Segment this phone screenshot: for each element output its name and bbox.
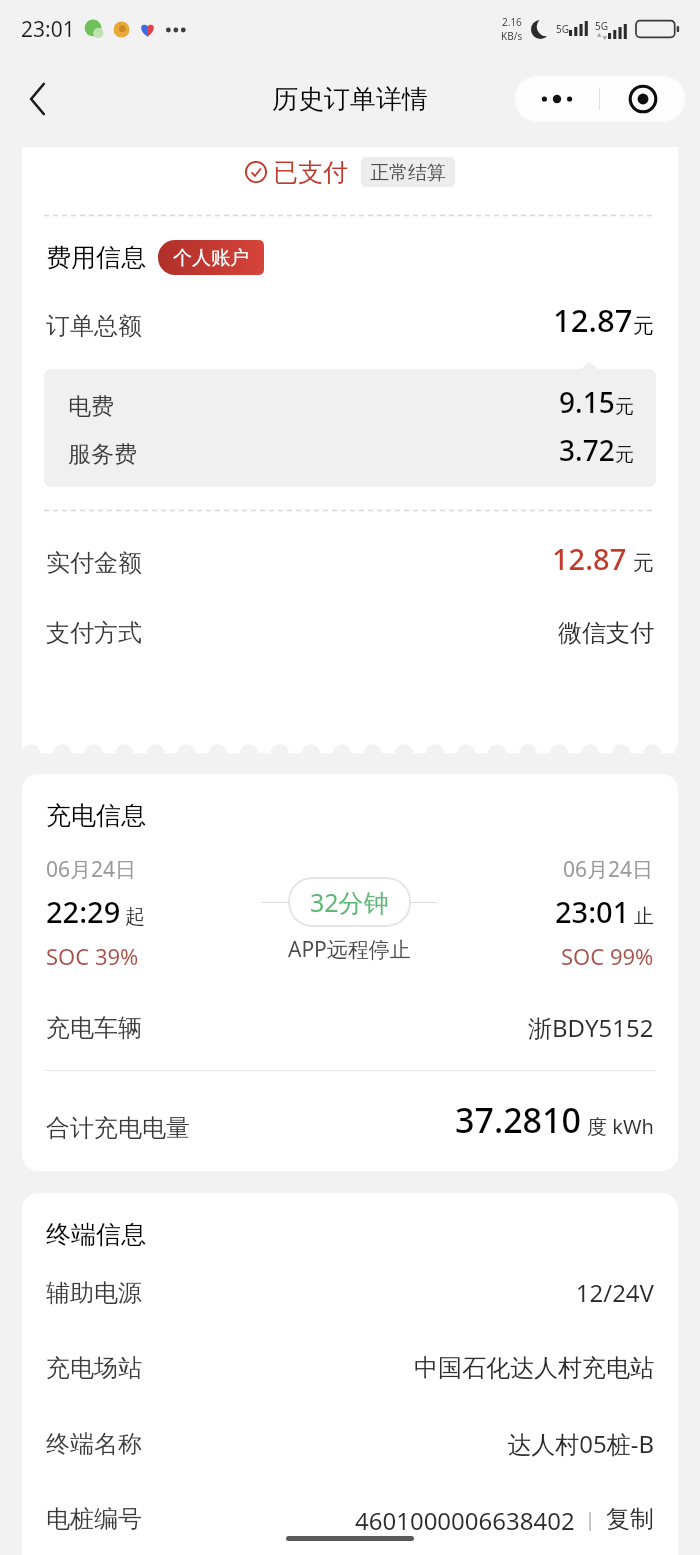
staticText: 12.87 xyxy=(552,539,627,578)
staticText: 中国石化达人村充电站 xyxy=(414,1353,654,1383)
staticText: 37.2810 xyxy=(455,1097,581,1143)
staticText: 3.72 xyxy=(559,431,615,469)
staticText: 32分钟 xyxy=(310,885,389,919)
staticText: 实付金额 xyxy=(46,548,142,578)
staticText: 12/24V xyxy=(575,1276,654,1309)
staticText: 5G xyxy=(556,22,569,36)
staticText: 元 xyxy=(615,395,634,419)
staticText: 达人村05桩-B xyxy=(507,1427,654,1460)
staticText: 起 xyxy=(125,904,145,929)
button[interactable]: More options xyxy=(514,75,599,123)
staticText: 23:01 xyxy=(555,892,630,931)
staticText: | xyxy=(584,1504,597,1531)
staticText: 度 kWh xyxy=(587,1113,654,1140)
staticText: 终端名称 xyxy=(46,1429,142,1459)
staticText: 支付方式 xyxy=(46,618,142,648)
staticText: 正常结算 xyxy=(370,161,446,183)
staticText: 22:29 xyxy=(46,892,121,931)
staticText: 2.16 xyxy=(502,15,522,29)
staticText: 服务费 xyxy=(68,440,137,469)
staticText: APP远程停止 xyxy=(288,935,411,964)
staticText: 浙BDY5152 xyxy=(528,1011,654,1044)
staticText: 费用信息 xyxy=(46,242,146,273)
staticText: 复制 xyxy=(606,1504,654,1531)
staticText: 止 xyxy=(634,904,654,929)
staticText: 订单总额 xyxy=(46,311,142,341)
button[interactable]: 复制 xyxy=(606,1504,654,1531)
staticText: 充电信息 xyxy=(46,800,146,831)
staticText: 元 xyxy=(633,550,654,576)
staticText: 合计充电电量 xyxy=(46,1113,190,1143)
staticText: SOC 99% xyxy=(561,941,654,971)
staticText: 元 xyxy=(633,313,654,339)
button[interactable]: Back xyxy=(12,73,64,125)
staticText: 充电场站 xyxy=(46,1353,142,1383)
staticText: 9.15 xyxy=(559,383,615,421)
staticText: 已支付 xyxy=(273,157,348,187)
staticText: 4601000006638402 xyxy=(355,1504,575,1531)
staticText: SOC 39% xyxy=(46,941,139,971)
staticText: 辅助电源 xyxy=(46,1278,142,1308)
staticText: 历史订单详情 xyxy=(272,83,428,116)
staticText: 充电车辆 xyxy=(46,1013,142,1043)
staticText: 元 xyxy=(615,443,634,467)
staticText: 12.87 xyxy=(553,299,633,341)
staticText: 个人账户 xyxy=(173,246,249,270)
staticText: 23:01 xyxy=(21,15,75,44)
staticText: 电费 xyxy=(68,392,114,421)
button[interactable]: Close xyxy=(600,75,686,123)
staticText: 微信支付 xyxy=(558,618,654,648)
staticText: KB/s xyxy=(501,29,523,43)
staticText: 5G xyxy=(595,19,608,33)
staticText: 终端信息 xyxy=(46,1219,146,1250)
staticText: 06月24日 xyxy=(563,855,654,884)
staticText: 电桩编号 xyxy=(46,1504,142,1531)
staticText: 06月24日 xyxy=(46,855,137,884)
